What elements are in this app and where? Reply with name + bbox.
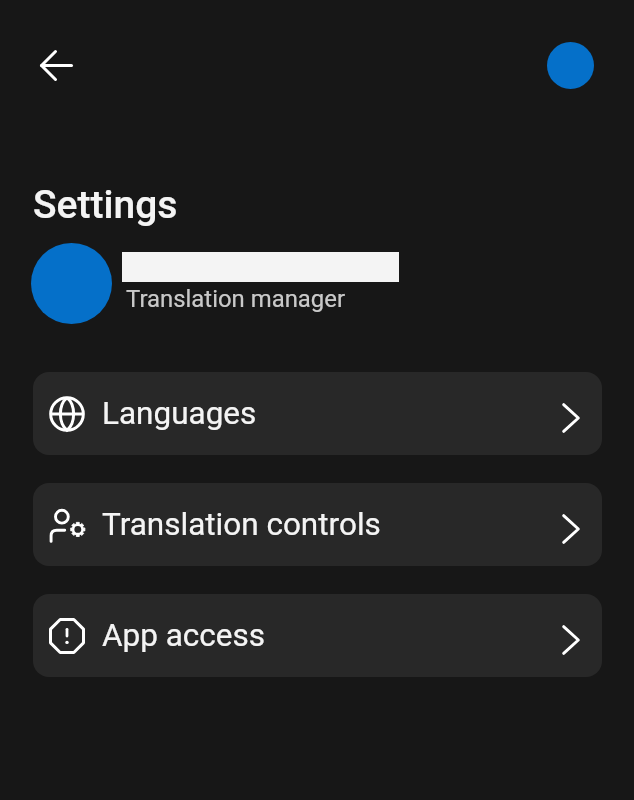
staticText: Translation controls [102, 506, 381, 543]
staticText: Settings [33, 182, 178, 228]
button[interactable]: App access [33, 594, 602, 677]
button[interactable]: Account, Translation manager [31, 243, 401, 324]
button[interactable]: Translation controls [33, 483, 602, 566]
staticText: Languages [102, 395, 257, 432]
staticText: App access [102, 617, 266, 654]
button[interactable]: Navigate up [32, 41, 81, 90]
staticText: Translation manager [126, 285, 346, 313]
button[interactable]: Account [547, 42, 594, 89]
button[interactable]: Languages [33, 372, 602, 455]
